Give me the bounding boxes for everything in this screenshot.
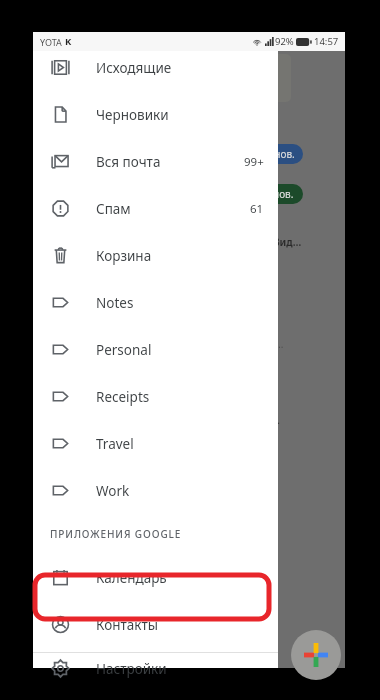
- staticText: 99+: [244, 154, 264, 170]
- staticText: Корзина: [96, 247, 264, 265]
- button[interactable]: Personal: [33, 326, 278, 373]
- button[interactable]: Спам: [33, 185, 278, 232]
- staticText: ıpossi…: [245, 413, 280, 427]
- button[interactable]: Travel: [33, 420, 278, 467]
- staticText: Контакты: [96, 616, 264, 634]
- staticText: 14 мар.: [231, 593, 269, 607]
- button[interactable]: Исходящие: [33, 44, 278, 91]
- button[interactable]: Календарь: [33, 554, 278, 601]
- staticText: Notes: [96, 294, 264, 312]
- staticText: 14:57: [314, 35, 339, 48]
- button[interactable]: Черновики: [33, 91, 278, 138]
- staticText: y, the…: [245, 273, 279, 287]
- staticText: 92%: [275, 35, 294, 48]
- staticText: Исходящие: [96, 59, 264, 77]
- staticText: 61: [250, 201, 264, 217]
- staticText: Travel: [96, 435, 264, 453]
- staticText: Personal: [96, 341, 264, 359]
- staticText: ПРИЛОЖЕНИЯ GOOGLE: [50, 527, 182, 541]
- button[interactable]: Корзина: [33, 232, 278, 279]
- staticText: Календарь: [96, 569, 264, 587]
- staticText: Вас п…: [245, 481, 279, 495]
- button[interactable]: Receipts: [33, 373, 278, 420]
- button[interactable]: Compose: [291, 630, 341, 680]
- staticText: ıентар…: [245, 337, 284, 351]
- button[interactable]: Настройки: [33, 657, 278, 680]
- staticText: K: [65, 35, 72, 48]
- button[interactable]: Контакты: [33, 601, 278, 648]
- staticText: 44 нов.: [259, 187, 294, 201]
- staticText: Вся почта: [96, 153, 244, 171]
- staticText: Настройки: [96, 660, 264, 678]
- staticText: Work: [96, 482, 264, 500]
- staticText: YOTA: [40, 36, 62, 48]
- staticText: Черновики: [96, 106, 264, 124]
- button[interactable]: Work: [33, 467, 278, 514]
- staticText: Receipts: [96, 388, 264, 406]
- staticText: re, М.Вид…: [245, 235, 302, 249]
- button[interactable]: Notes: [33, 279, 278, 326]
- staticText: ctioni…: [245, 401, 279, 415]
- staticText: Спам: [96, 200, 250, 218]
- button[interactable]: Вся почта: [33, 138, 278, 185]
- staticText: 3 нов.: [266, 147, 295, 161]
